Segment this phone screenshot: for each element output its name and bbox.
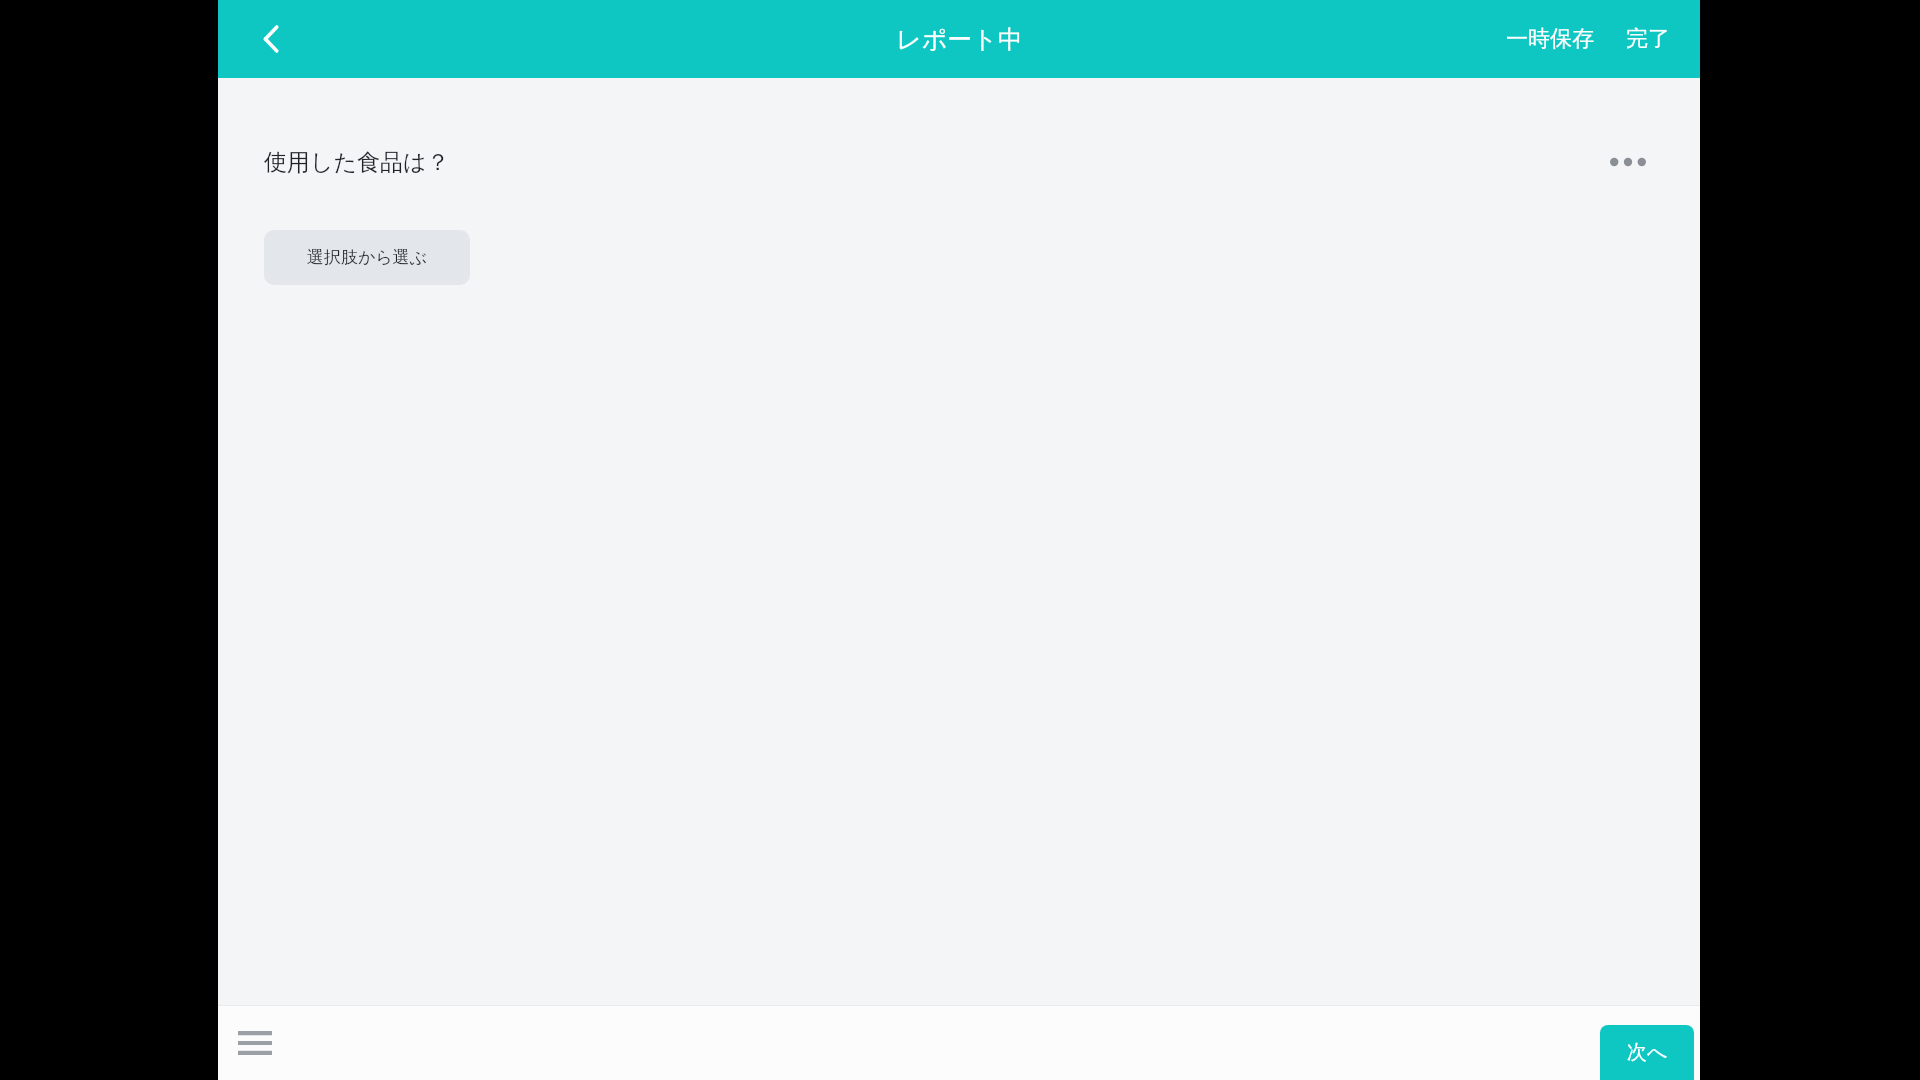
staticText: 次へ [1627, 1040, 1668, 1065]
button[interactable]: メニュー [224, 1012, 286, 1074]
button[interactable]: 次へ [1600, 1025, 1694, 1080]
staticText: 選択肢から選ぶ [307, 247, 428, 268]
staticText: 使用した食品は？ [264, 148, 450, 177]
button[interactable]: 一時保存 [1496, 13, 1604, 65]
button[interactable]: 戻る [240, 7, 304, 71]
button[interactable]: その他のオプション [1602, 136, 1654, 188]
button[interactable]: 完了 [1616, 13, 1680, 65]
staticText: 一時保存 [1506, 25, 1594, 53]
staticText: レポート中 [896, 24, 1023, 55]
staticText: 完了 [1626, 25, 1670, 53]
button[interactable]: 選択肢から選ぶ [264, 230, 470, 285]
